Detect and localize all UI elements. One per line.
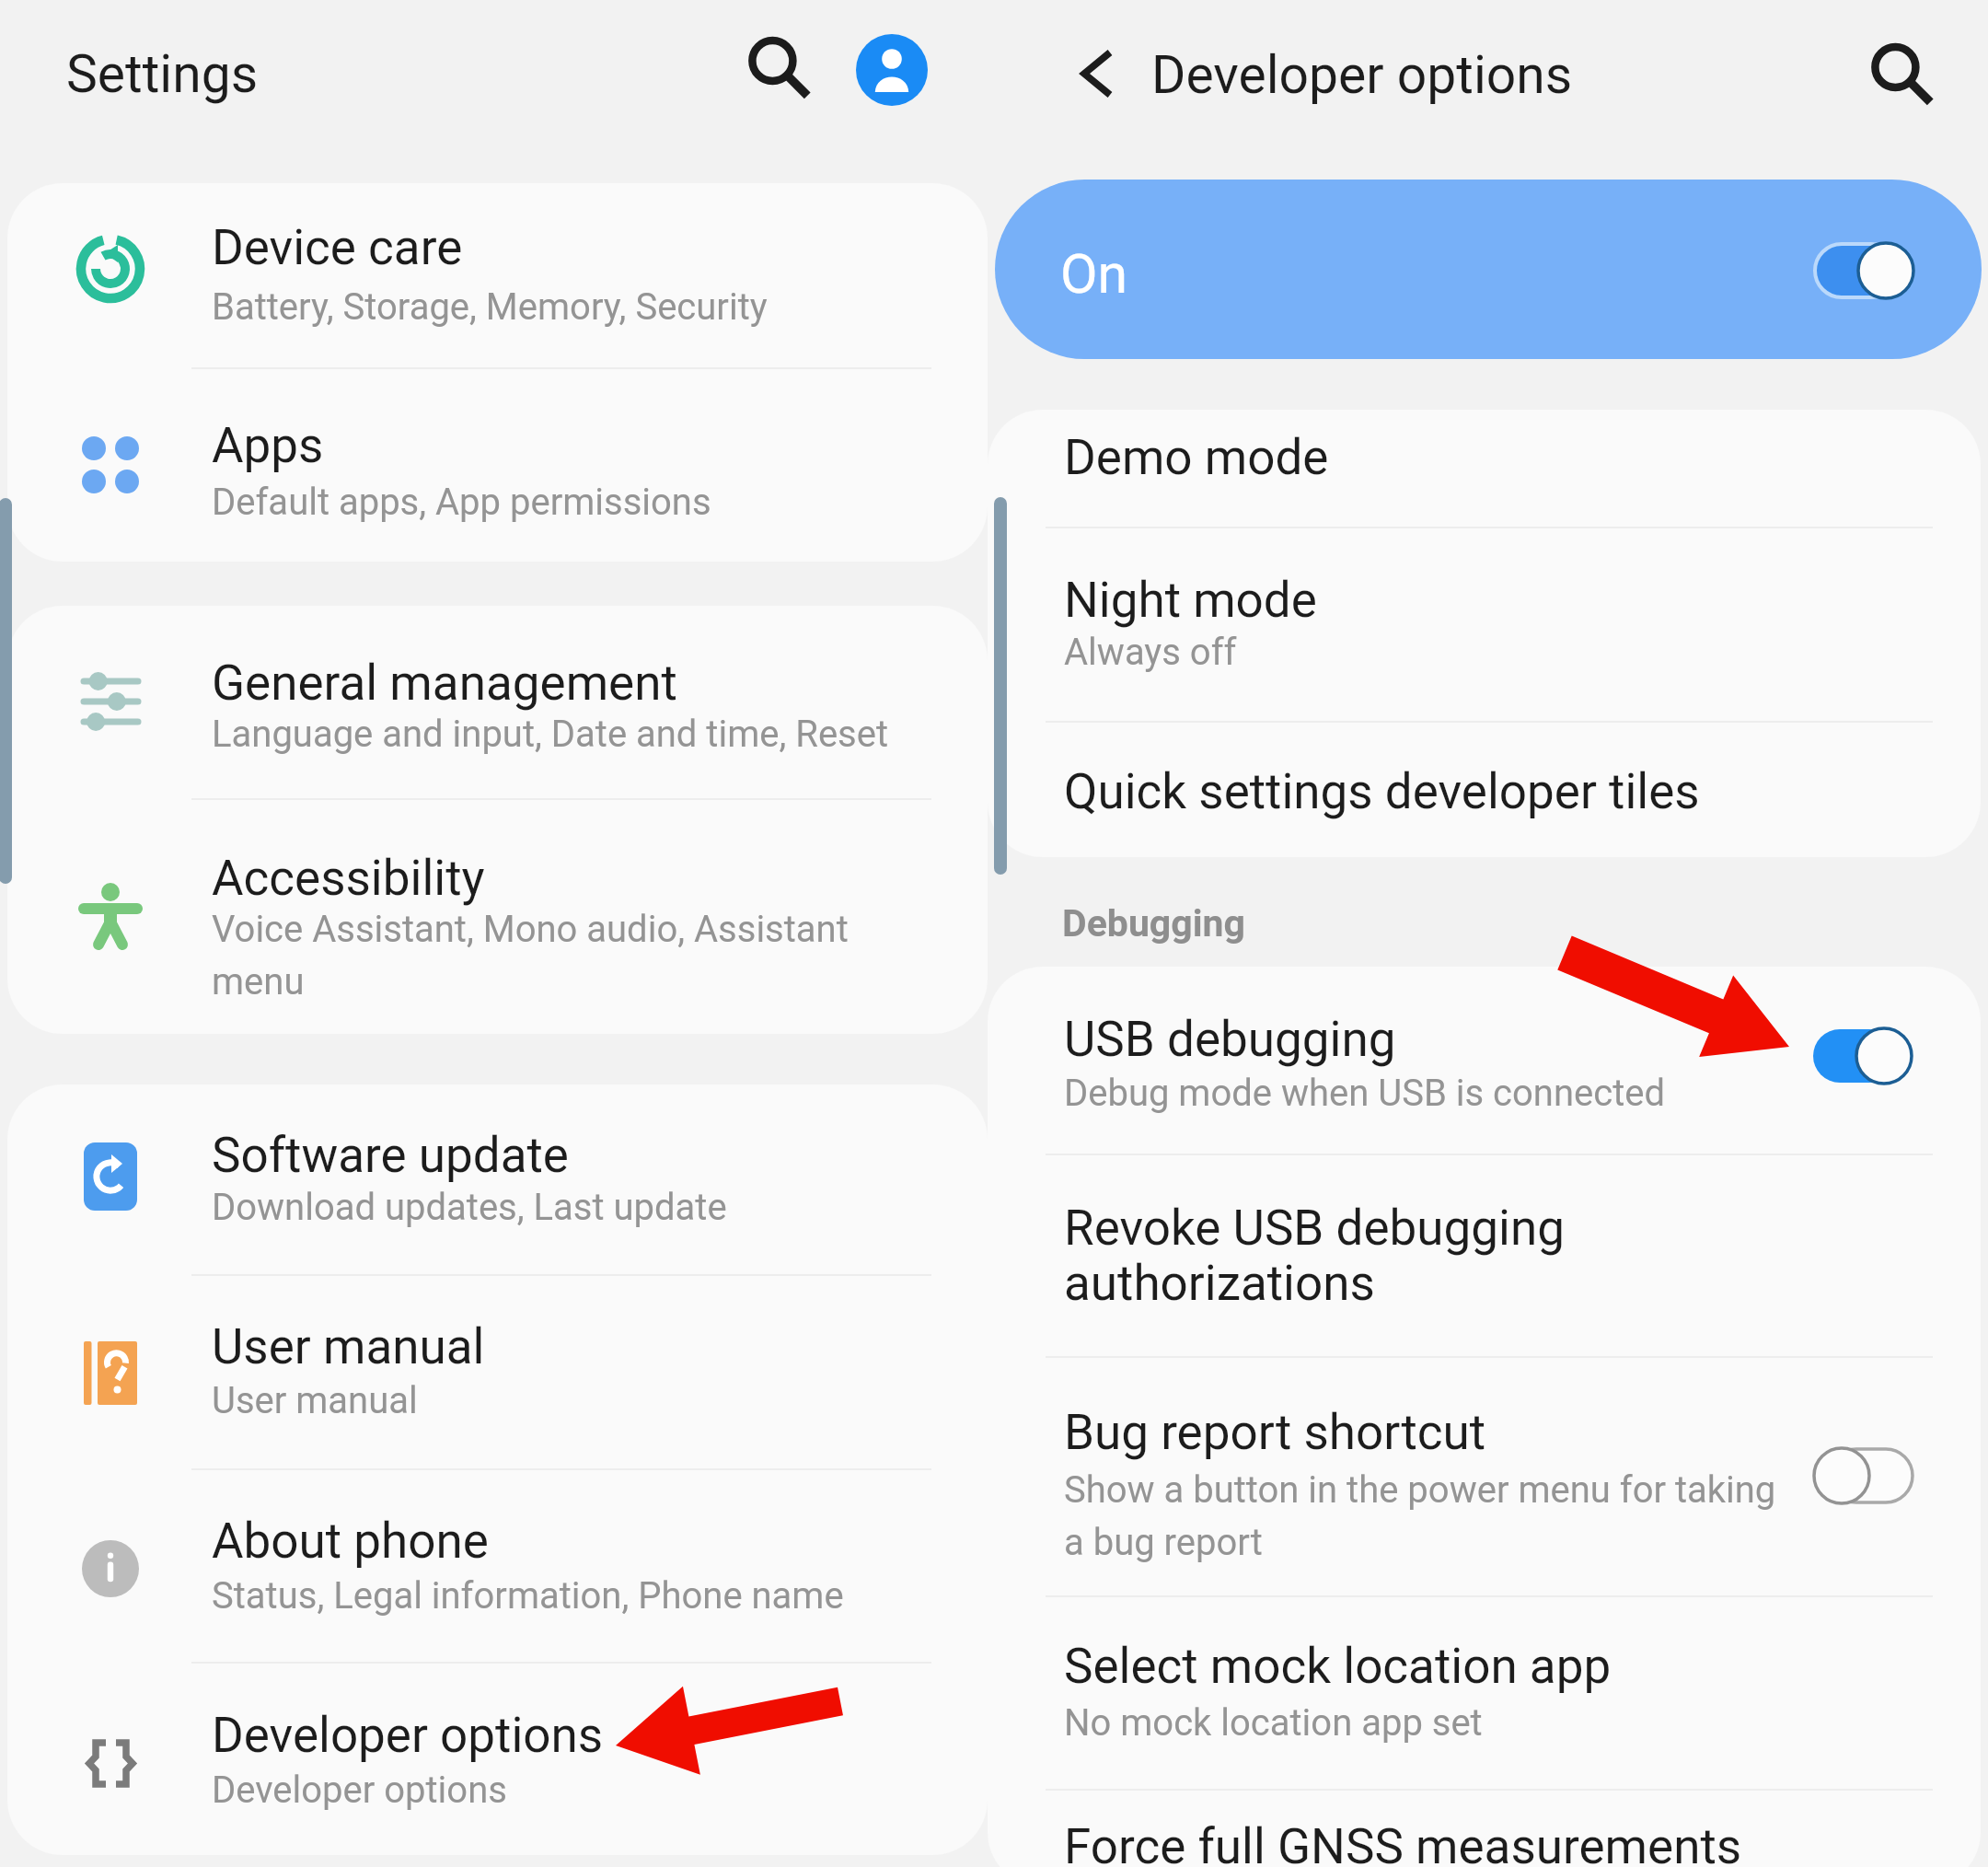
staticText: About phone (212, 1513, 489, 1570)
staticText: User manual (212, 1318, 485, 1375)
button[interactable]: Back (1051, 28, 1143, 120)
button[interactable]: Demo mode (994, 410, 1981, 527)
staticText: Voice Assistant, Mono audio, Assistant m… (212, 908, 849, 1003)
staticText: Developer options (212, 1707, 604, 1764)
staticText: Accessibility (212, 850, 485, 907)
staticText: User manual (212, 1379, 418, 1422)
staticText: Battery, Storage, Memory, Security (212, 285, 768, 329)
staticText: Force full GNSS measurements (1064, 1818, 1742, 1867)
button[interactable]: Account (856, 34, 928, 106)
button[interactable]: User manual (0, 1276, 988, 1468)
staticText: Night mode (1064, 572, 1317, 629)
staticText: Apps (212, 417, 324, 474)
staticText: Language and input, Date and time, Reset (212, 713, 889, 756)
staticText: On (1060, 242, 1128, 306)
staticText: Demo mode (1064, 429, 1329, 486)
button[interactable]: Search (727, 17, 828, 118)
button[interactable]: Software update (0, 1084, 988, 1274)
button[interactable]: Revoke USB debugging authorizations (994, 1155, 1981, 1356)
staticText: Bug report shortcut (1064, 1404, 1486, 1461)
staticText: Always off (1064, 631, 1237, 674)
staticText: Debug mode when USB is connected (1064, 1072, 1666, 1115)
button[interactable]: Developer options (0, 1664, 988, 1855)
staticText: Settings (66, 43, 259, 105)
button[interactable]: Night mode (994, 528, 1981, 721)
button[interactable]: About phone (0, 1470, 988, 1662)
button[interactable]: Search (1850, 23, 1951, 124)
staticText: General management (212, 655, 677, 712)
staticText: Select mock location app (1064, 1638, 1612, 1695)
button[interactable]: Select mock location app (994, 1597, 1981, 1789)
staticText: Developer options (212, 1768, 507, 1812)
button[interactable]: USB debugging (994, 967, 1981, 1154)
staticText: Status, Legal information, Phone name (212, 1574, 844, 1618)
staticText: Default apps, App permissions (212, 481, 711, 524)
button[interactable]: Apps (0, 369, 988, 562)
button[interactable]: Quick settings developer tiles (994, 723, 1981, 857)
staticText: USB debugging (1064, 1011, 1396, 1068)
button[interactable]: Force full GNSS measurements (994, 1791, 1981, 1867)
button[interactable]: Bug report shortcut (994, 1358, 1981, 1595)
staticText: Device care (212, 219, 463, 276)
staticText: No mock location app set (1064, 1701, 1483, 1745)
staticText: Show a button in the power menu for taki… (1064, 1468, 1776, 1564)
button[interactable]: Device care (0, 183, 988, 367)
staticText: Debugging (1062, 901, 1245, 945)
button[interactable]: On (995, 180, 1982, 359)
staticText: Download updates, Last update (212, 1186, 727, 1229)
staticText: Developer options (1151, 44, 1573, 106)
staticText: Revoke USB debugging authorizations (1064, 1200, 1565, 1312)
staticText: Software update (212, 1127, 569, 1184)
staticText: Quick settings developer tiles (1064, 763, 1700, 820)
button[interactable]: Accessibility (0, 800, 988, 1034)
button[interactable]: General management (0, 606, 988, 798)
